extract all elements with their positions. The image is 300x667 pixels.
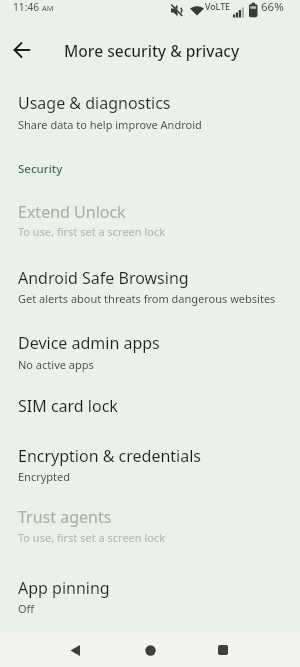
button[interactable] <box>207 634 239 666</box>
button[interactable] <box>134 634 166 666</box>
button[interactable]: Encryption & credentials <box>0 436 300 496</box>
button[interactable]: Android Safe Browsing <box>0 257 300 318</box>
button[interactable]: Device admin apps <box>0 323 300 384</box>
staticText: More security & privacy <box>64 40 240 61</box>
staticText: No active apps <box>18 357 94 372</box>
staticText: Off <box>18 601 35 616</box>
button[interactable]: SIM card lock <box>0 386 300 426</box>
button[interactable] <box>59 634 91 666</box>
staticText: Security <box>18 161 63 177</box>
staticText: VoLTE <box>205 1 230 13</box>
staticText: 11:46 <box>13 0 40 14</box>
staticText: Trust agents <box>18 506 112 528</box>
staticText: SIM card lock <box>18 395 118 417</box>
staticText: 66% <box>261 0 284 15</box>
staticText: Extend Unlock <box>18 201 126 223</box>
button[interactable]: App pinning <box>0 568 300 628</box>
button[interactable]: Extend Unlock <box>0 192 300 252</box>
staticText: Encrypted <box>18 469 71 484</box>
staticText: Usage & diagnostics <box>18 92 171 114</box>
staticText: AM <box>42 3 54 13</box>
staticText: App pinning <box>18 577 110 599</box>
staticText: Encryption & credentials <box>18 445 201 467</box>
button[interactable]: Usage & diagnostics <box>0 83 300 144</box>
button[interactable]: Trust agents <box>0 497 300 557</box>
staticText: Share data to help improve Android <box>18 117 202 132</box>
staticText: Device admin apps <box>18 332 160 354</box>
staticText: Android Safe Browsing <box>18 267 189 289</box>
button[interactable] <box>6 34 38 66</box>
staticText: To use, first set a screen lock <box>18 530 166 545</box>
staticText: To use, first set a screen lock <box>18 224 166 239</box>
staticText: Get alerts about threats from dangerous … <box>18 291 276 306</box>
